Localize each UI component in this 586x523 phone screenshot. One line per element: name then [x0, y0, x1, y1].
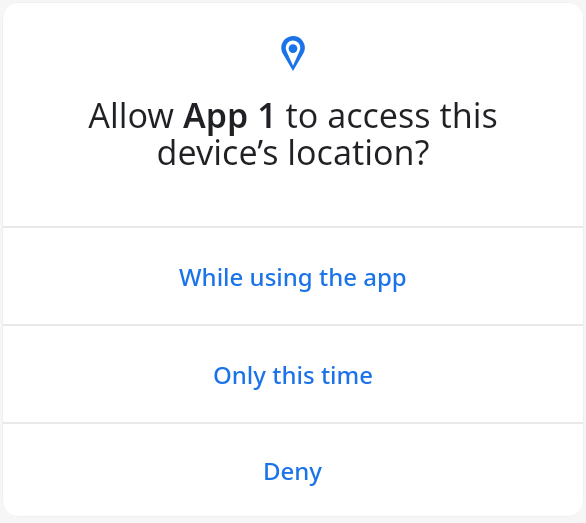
button[interactable]: Deny	[2, 424, 584, 517]
staticText: While using the app	[179, 260, 407, 293]
button[interactable]: Only this time	[2, 326, 584, 422]
staticText: Allow App 1 to access this device’s loca…	[2, 92, 584, 175]
staticText: Deny	[263, 454, 323, 487]
staticText: Only this time	[213, 358, 374, 391]
button[interactable]: While using the app	[2, 228, 584, 324]
